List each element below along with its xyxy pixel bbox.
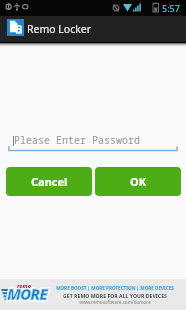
staticText: MORE BOOST | MORE PROTECTION | MORE DEVI…	[56, 285, 174, 291]
staticText: www.remosoftware.com/domore	[79, 299, 151, 305]
staticText: OK	[130, 174, 147, 189]
staticText: GET REMO MORE FOR ALL YOUR DEVICES	[63, 292, 167, 299]
button[interactable]: Remo More advertisement	[0, 279, 186, 310]
staticText: MORE	[7, 283, 47, 304]
staticText: remo	[17, 282, 32, 290]
staticText: MORE	[7, 283, 47, 304]
staticText: 5:57	[162, 2, 180, 14]
staticText: MORE	[7, 283, 47, 304]
staticText: Remo Locker	[27, 22, 92, 36]
staticText: Cancel	[31, 174, 68, 189]
button[interactable]: OK	[95, 167, 181, 196]
staticText: Please Enter Password	[14, 133, 140, 147]
button[interactable]: Cancel	[6, 167, 92, 196]
